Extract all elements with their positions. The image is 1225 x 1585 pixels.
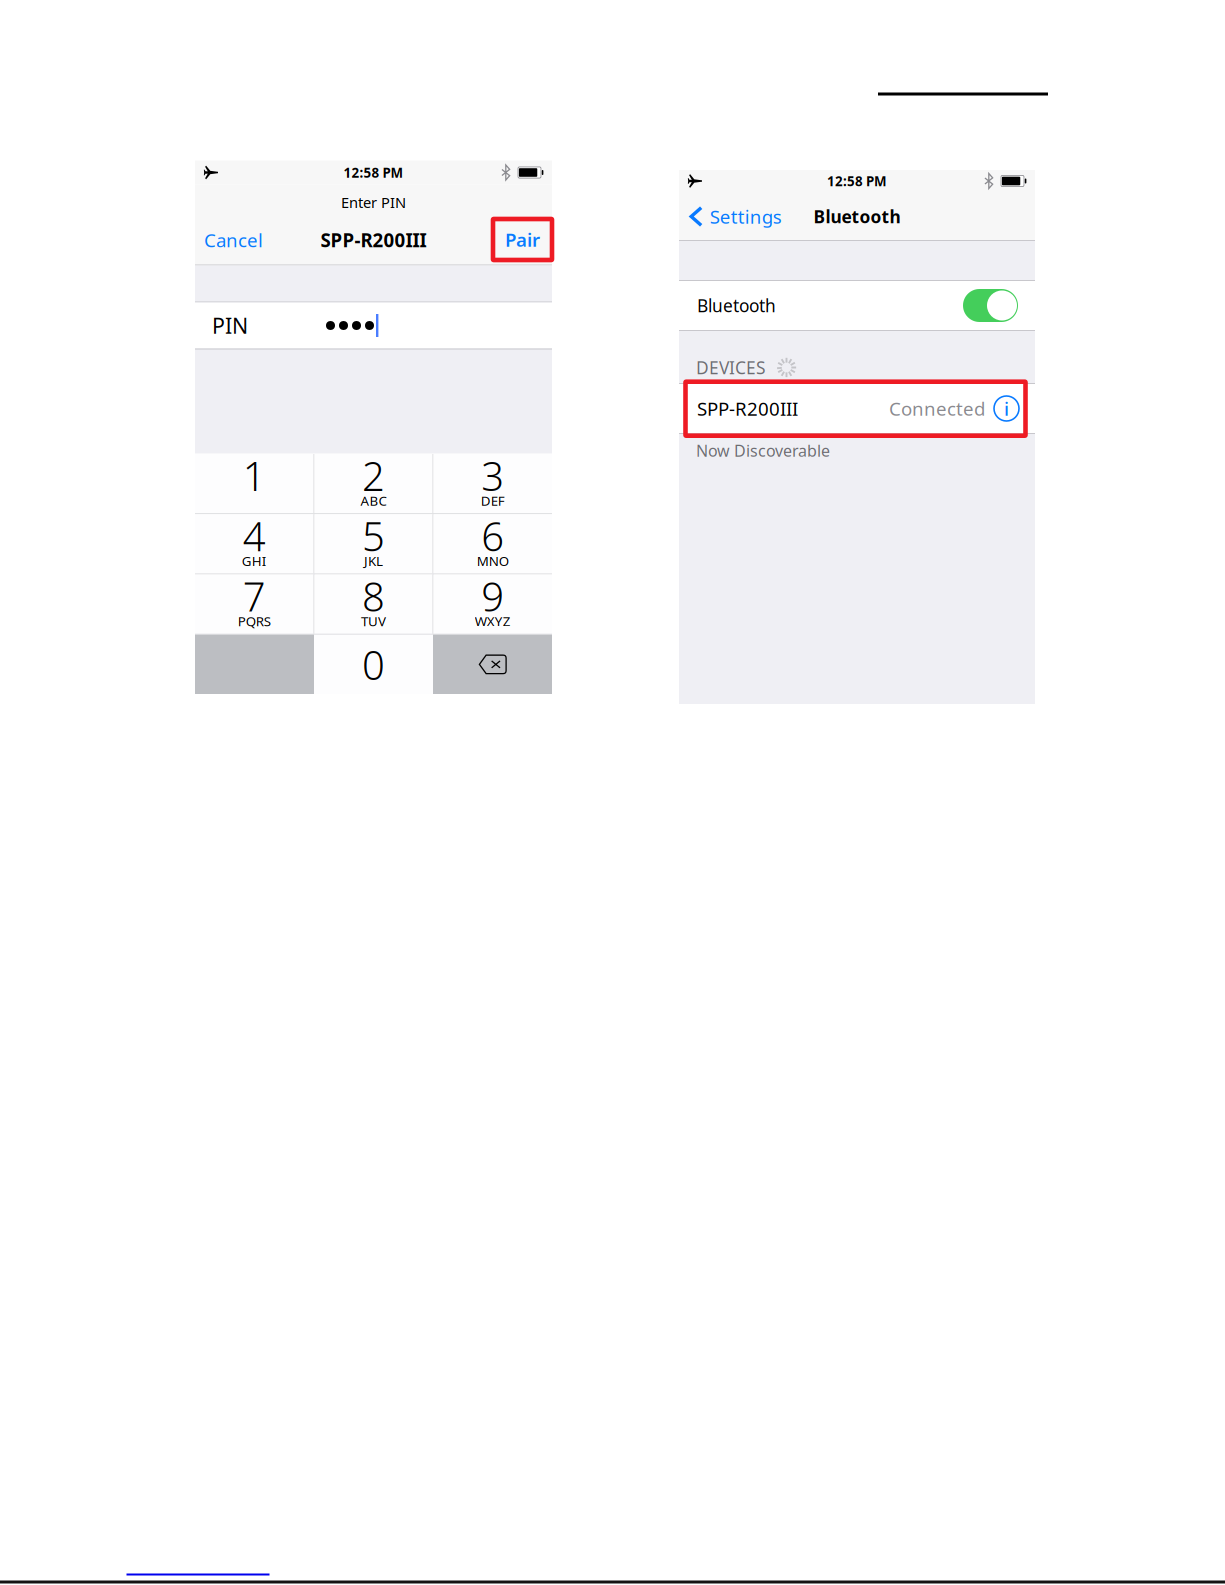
staticText: WXYZ — [475, 612, 511, 630]
button[interactable]: Bluetooth — [679, 281, 1035, 330]
staticText: Settings — [710, 204, 782, 229]
staticText: 5 — [362, 509, 385, 562]
staticText: DEF — [481, 492, 505, 509]
staticText: Bluetooth — [813, 205, 900, 228]
staticText: Now Discoverable — [696, 440, 830, 461]
button[interactable]: Delete — [433, 635, 552, 694]
staticText: 6 — [481, 509, 504, 562]
button[interactable]: PIN — [195, 302, 552, 348]
button[interactable]: 8 — [314, 574, 432, 634]
staticText: JKL — [364, 552, 383, 570]
staticText: i — [1004, 396, 1009, 421]
staticText: ABC — [360, 492, 386, 509]
button[interactable]: 9 — [433, 574, 552, 634]
staticText: TUV — [361, 612, 386, 630]
staticText: 3 — [481, 449, 504, 502]
staticText: Connected — [889, 396, 985, 421]
staticText: 7 — [243, 569, 266, 622]
staticText: 8 — [362, 569, 385, 622]
staticText: MNO — [477, 552, 509, 570]
button[interactable]: 0 — [314, 635, 433, 694]
staticText: Pair — [505, 227, 540, 252]
button[interactable]: SPP-R200III — [679, 384, 1035, 433]
button[interactable]: Settings — [679, 192, 790, 241]
staticText: Enter PIN — [341, 192, 406, 212]
button[interactable]: Cancel — [195, 184, 271, 265]
button[interactable]: 5 — [314, 514, 432, 573]
button[interactable]: 4 — [195, 514, 313, 573]
staticText: 0 — [362, 638, 385, 691]
button[interactable]: 6 — [433, 514, 552, 573]
staticText: DEVICES — [696, 356, 766, 379]
staticText: 9 — [481, 569, 504, 622]
button[interactable]: 1 — [195, 454, 313, 513]
staticText: Cancel — [204, 228, 263, 252]
staticText: Bluetooth — [697, 294, 776, 317]
staticText: GHI — [242, 552, 267, 570]
staticText: SPP-R200III — [697, 396, 798, 421]
staticText: SPP-R200III — [320, 228, 426, 252]
staticText: 2 — [362, 449, 385, 502]
button[interactable]: 3 — [433, 454, 552, 513]
staticText: 4 — [243, 509, 266, 562]
button[interactable]: 7 — [195, 574, 313, 634]
staticText: 1 — [243, 449, 266, 502]
button[interactable]: Device info — [988, 390, 1025, 427]
staticText: PIN — [212, 311, 248, 340]
button[interactable]: Pair — [493, 219, 552, 260]
button[interactable]: 2 — [314, 454, 432, 513]
staticText: 12:58 PM — [343, 164, 403, 181]
staticText: PQRS — [238, 612, 271, 630]
staticText: 12:58 PM — [827, 172, 887, 190]
